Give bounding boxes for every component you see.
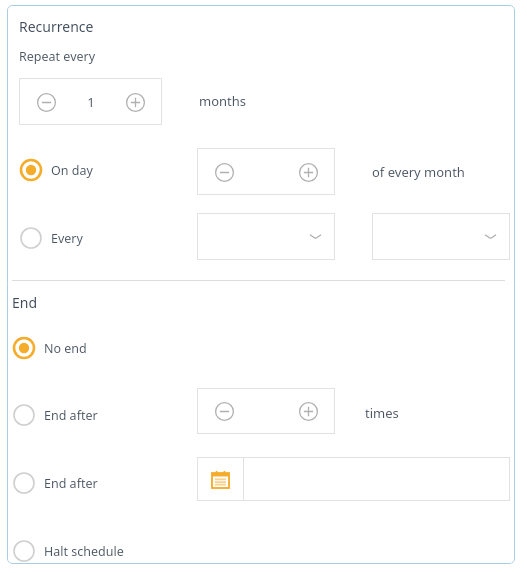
staticText: months bbox=[199, 92, 247, 110]
staticText: End bbox=[12, 293, 38, 312]
staticText: times bbox=[365, 404, 399, 422]
staticText: Every bbox=[51, 230, 83, 247]
button[interactable]: Decrease bbox=[211, 398, 237, 424]
button[interactable]: Every bbox=[20, 225, 83, 251]
button[interactable]: Decrease bbox=[33, 89, 59, 115]
staticText: Repeat every bbox=[19, 48, 96, 65]
staticText: No end bbox=[44, 340, 87, 357]
staticText: of every month bbox=[372, 163, 465, 181]
button[interactable]: Pick date bbox=[197, 457, 244, 501]
button[interactable] bbox=[244, 457, 510, 501]
button[interactable]: Increase bbox=[122, 89, 148, 115]
button[interactable]: Open dropdown bbox=[197, 213, 335, 260]
button[interactable]: On day bbox=[20, 157, 93, 183]
button[interactable]: Open dropdown bbox=[372, 213, 510, 260]
button[interactable]: Halt schedule bbox=[13, 538, 124, 564]
button[interactable]: Increase bbox=[295, 159, 321, 185]
staticText: End after bbox=[44, 407, 98, 424]
button[interactable]: End after bbox=[13, 402, 98, 428]
button[interactable]: No end bbox=[13, 335, 87, 361]
staticText: End after bbox=[44, 475, 98, 492]
staticText: Recurrence bbox=[19, 17, 94, 36]
button[interactable]: Increase bbox=[295, 398, 321, 424]
button[interactable]: End after bbox=[13, 470, 98, 496]
button[interactable]: Decrease bbox=[211, 159, 237, 185]
staticText: On day bbox=[51, 162, 93, 179]
staticText: Halt schedule bbox=[44, 543, 124, 560]
staticText: 1 bbox=[87, 93, 95, 111]
